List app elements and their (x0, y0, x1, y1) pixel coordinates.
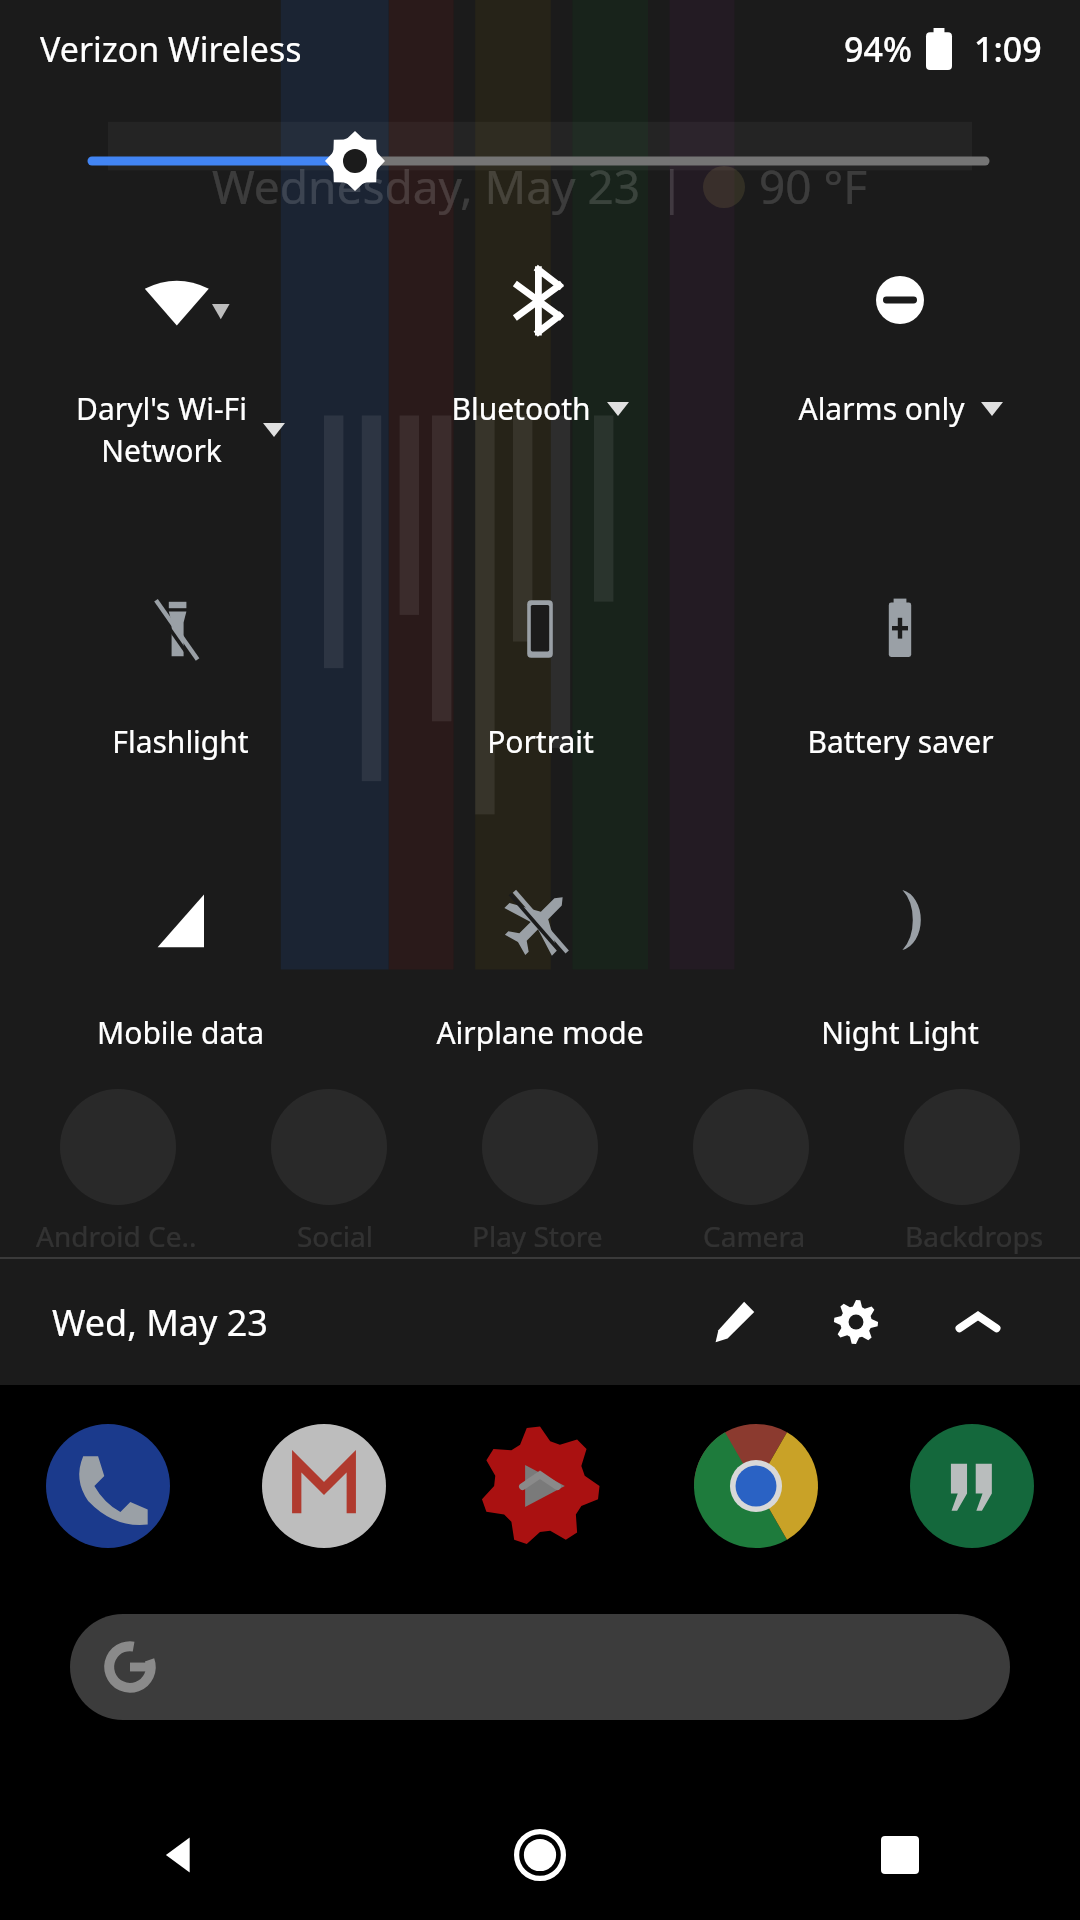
button[interactable]: Gmail (262, 1424, 386, 1548)
staticText: Airplane mode (436, 1012, 644, 1053)
staticText: Camera (703, 1217, 806, 1255)
staticText: Play Store (472, 1217, 603, 1255)
staticText: 90 °F (759, 155, 868, 218)
staticText: Night Light (821, 1012, 979, 1053)
button[interactable]: Brightness (0, 126, 1080, 196)
button[interactable]: Play Store (478, 1424, 602, 1548)
button[interactable]: Portrait (360, 589, 720, 762)
staticText: | (659, 155, 685, 218)
staticText: Social (297, 1217, 373, 1255)
button[interactable]: Settings (814, 1280, 898, 1364)
staticText: Mobile data (97, 1012, 264, 1053)
staticText: Alarms only (798, 388, 965, 429)
staticText: Battery saver (807, 721, 994, 762)
button[interactable]: Night Light (720, 880, 1080, 1053)
button[interactable]: Collapse (936, 1280, 1020, 1364)
button[interactable]: Battery saver (720, 589, 1080, 762)
staticText: Wednesday, May 23 (212, 155, 641, 218)
button[interactable]: Flashlight (0, 589, 360, 762)
button[interactable]: Mobile data (0, 880, 360, 1053)
staticText: Flashlight (112, 721, 249, 762)
button[interactable]: Recents (720, 1790, 1080, 1920)
staticText: 94% (844, 26, 912, 72)
button[interactable]: Hangouts (910, 1424, 1034, 1548)
staticText: Android Ce.. (36, 1217, 197, 1255)
button[interactable]: Bluetooth (360, 260, 720, 429)
staticText: Daryl's Wi-Fi Network (76, 388, 247, 471)
button[interactable]: Home (360, 1790, 720, 1920)
staticText: Bluetooth (451, 388, 591, 429)
button[interactable]: Alarms only (720, 260, 1080, 429)
button[interactable]: Google search (70, 1614, 1010, 1720)
button[interactable]: Daryl's Wi-Fi Network (0, 260, 360, 471)
staticText: Backdrops (905, 1217, 1044, 1255)
button[interactable]: Phone (46, 1424, 170, 1548)
staticText: 1:09 (974, 26, 1042, 72)
button[interactable]: Edit tiles (692, 1280, 776, 1364)
button[interactable]: Chrome (694, 1424, 818, 1548)
staticText: Portrait (487, 721, 594, 762)
staticText: Wed, May 23 (52, 1298, 268, 1347)
staticText: Verizon Wireless (40, 26, 302, 72)
button[interactable]: Back (0, 1790, 360, 1920)
button[interactable]: Airplane mode (360, 880, 720, 1053)
